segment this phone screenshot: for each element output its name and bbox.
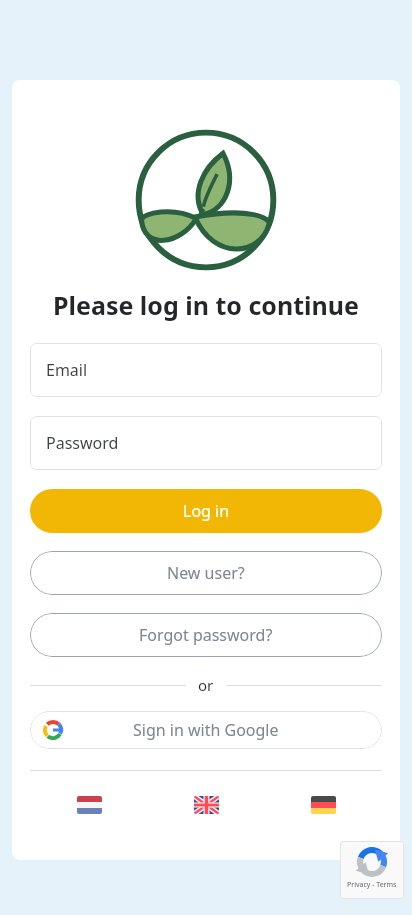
button[interactable]: Email	[30, 343, 382, 397]
button[interactable]: New user?	[30, 551, 382, 595]
staticText: New user?	[167, 562, 245, 584]
staticText: Email	[46, 359, 88, 381]
staticText: Password	[46, 432, 119, 454]
staticText: Sign in with Google	[133, 719, 279, 741]
button[interactable]: English	[148, 796, 265, 814]
button[interactable]: Log in	[30, 489, 382, 533]
button[interactable]: Dutch	[30, 796, 148, 814]
button[interactable]: Password	[30, 416, 382, 470]
staticText: or	[198, 675, 214, 695]
staticText: Privacy - Terms	[347, 880, 397, 890]
staticText: Log in	[183, 500, 230, 522]
button[interactable]: Sign in with Google	[30, 711, 382, 749]
staticText: Please log in to continue	[53, 288, 359, 322]
staticText: Forgot password?	[139, 624, 273, 646]
button[interactable]: Forgot password?	[30, 613, 382, 657]
button[interactable]: reCAPTCHA Privacy Terms	[340, 841, 404, 899]
button[interactable]: German	[265, 796, 382, 814]
